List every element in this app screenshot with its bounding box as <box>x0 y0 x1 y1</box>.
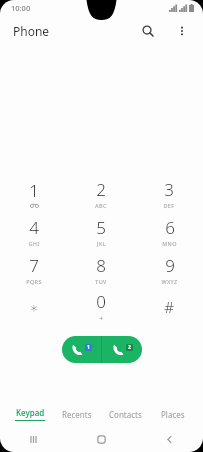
staticText: WXYZ <box>161 278 178 285</box>
button[interactable]: 6 <box>135 212 203 250</box>
button[interactable]: Recent apps <box>0 426 67 452</box>
button[interactable]: 8 <box>67 250 135 288</box>
button[interactable]: Keypad <box>6 402 53 426</box>
button[interactable]: # <box>135 288 203 326</box>
staticText: Places <box>161 409 185 420</box>
staticText: 2 <box>128 344 131 351</box>
staticText: 7 <box>29 254 39 277</box>
staticText: + <box>99 314 104 324</box>
staticText: GHI <box>28 240 40 247</box>
staticText: 4 <box>29 216 39 239</box>
staticText: 9 <box>165 254 175 277</box>
staticText: ∗ <box>29 299 39 316</box>
button[interactable]: Recents <box>53 402 101 426</box>
button[interactable]: 3 <box>135 174 203 212</box>
button[interactable]: Search <box>137 20 159 42</box>
button[interactable]: Places <box>149 402 197 426</box>
button[interactable]: 1 <box>0 174 67 212</box>
button[interactable]: Home <box>67 426 135 452</box>
staticText: 5 <box>96 216 106 239</box>
staticText: 2 <box>96 178 106 201</box>
staticText: MNO <box>162 240 177 247</box>
staticText: 3 <box>164 178 174 201</box>
button[interactable]: 2 <box>67 174 135 212</box>
staticText: 8 <box>96 254 106 277</box>
staticText: Phone <box>13 23 50 39</box>
staticText: # <box>164 297 174 317</box>
staticText: ABC <box>95 202 107 209</box>
staticText: 1 <box>87 344 90 351</box>
staticText: PQRS <box>26 278 42 285</box>
button[interactable]: 7 <box>0 250 67 288</box>
staticText: Recents <box>62 409 92 420</box>
staticText: 10:00 <box>11 3 31 13</box>
staticText: TUV <box>95 278 107 285</box>
button[interactable]: 9 <box>135 250 203 288</box>
button[interactable]: 5 <box>67 212 135 250</box>
staticText: Keypad <box>16 407 45 418</box>
staticText: Contacts <box>109 409 142 420</box>
button[interactable]: Contacts <box>101 402 149 426</box>
button[interactable]: Call with SIM 2 <box>102 336 142 363</box>
button[interactable]: More options <box>171 20 193 42</box>
button[interactable]: Back <box>135 426 203 452</box>
button[interactable]: 0 <box>67 288 135 326</box>
staticText: 0 <box>96 290 106 313</box>
staticText: 6 <box>165 216 175 239</box>
staticText: JKL <box>97 240 106 247</box>
staticText: 1 <box>29 179 39 202</box>
button[interactable]: 4 <box>0 212 67 250</box>
button[interactable]: Call with SIM 1 <box>62 336 101 363</box>
button[interactable]: ∗ <box>0 288 67 326</box>
staticText: DEF <box>163 202 175 209</box>
